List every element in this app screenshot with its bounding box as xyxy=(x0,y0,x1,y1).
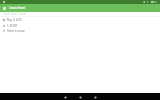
button[interactable]: Home xyxy=(77,94,83,100)
button[interactable]: Back xyxy=(62,94,68,100)
button[interactable]: Select a venue xyxy=(0,28,160,34)
button[interactable]: Recent apps xyxy=(92,94,98,100)
staticText: Select a venue xyxy=(7,29,25,33)
staticText: Create Event xyxy=(9,6,26,10)
button[interactable]: May 4, 2016 xyxy=(0,17,160,23)
staticText: May 4, 2016 xyxy=(7,18,22,22)
staticText: 1:30 PM xyxy=(7,24,17,28)
button[interactable]: 1:30 PM xyxy=(0,23,160,29)
button[interactable]: Close xyxy=(0,4,8,12)
staticText: Enter Event Name xyxy=(4,12,27,16)
